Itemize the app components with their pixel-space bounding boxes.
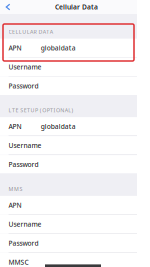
button[interactable]: Password bbox=[0, 155, 137, 173]
staticText: Username bbox=[9, 62, 42, 71]
staticText: globaldata bbox=[41, 43, 76, 52]
staticText: LTE SETUP (OPTIONAL) bbox=[9, 107, 74, 114]
staticText: Cellular Data bbox=[55, 3, 98, 11]
button[interactable]: Username bbox=[0, 136, 137, 154]
button[interactable]: Username bbox=[0, 215, 137, 233]
staticText: globaldata bbox=[41, 122, 76, 131]
button[interactable]: Back bbox=[0, 0, 16, 14]
staticText: CELLULAR DATA bbox=[9, 28, 53, 35]
button[interactable]: MMSC bbox=[0, 253, 137, 267]
button[interactable]: APN bbox=[0, 39, 137, 57]
staticText: APN bbox=[9, 201, 22, 210]
staticText: Username bbox=[9, 141, 42, 150]
staticText: Password bbox=[9, 81, 39, 90]
button[interactable]: Password bbox=[0, 77, 137, 95]
staticText: MMS bbox=[9, 185, 22, 192]
staticText: APN bbox=[9, 43, 22, 52]
button[interactable]: Password bbox=[0, 234, 137, 252]
staticText: Password bbox=[9, 160, 39, 169]
staticText: Password bbox=[9, 239, 39, 248]
button[interactable]: APN bbox=[0, 117, 137, 135]
staticText: Username bbox=[9, 220, 42, 229]
button[interactable]: Username bbox=[0, 58, 137, 76]
button[interactable]: APN bbox=[0, 196, 137, 214]
staticText: APN bbox=[9, 122, 22, 131]
staticText: MMSC bbox=[9, 258, 29, 267]
